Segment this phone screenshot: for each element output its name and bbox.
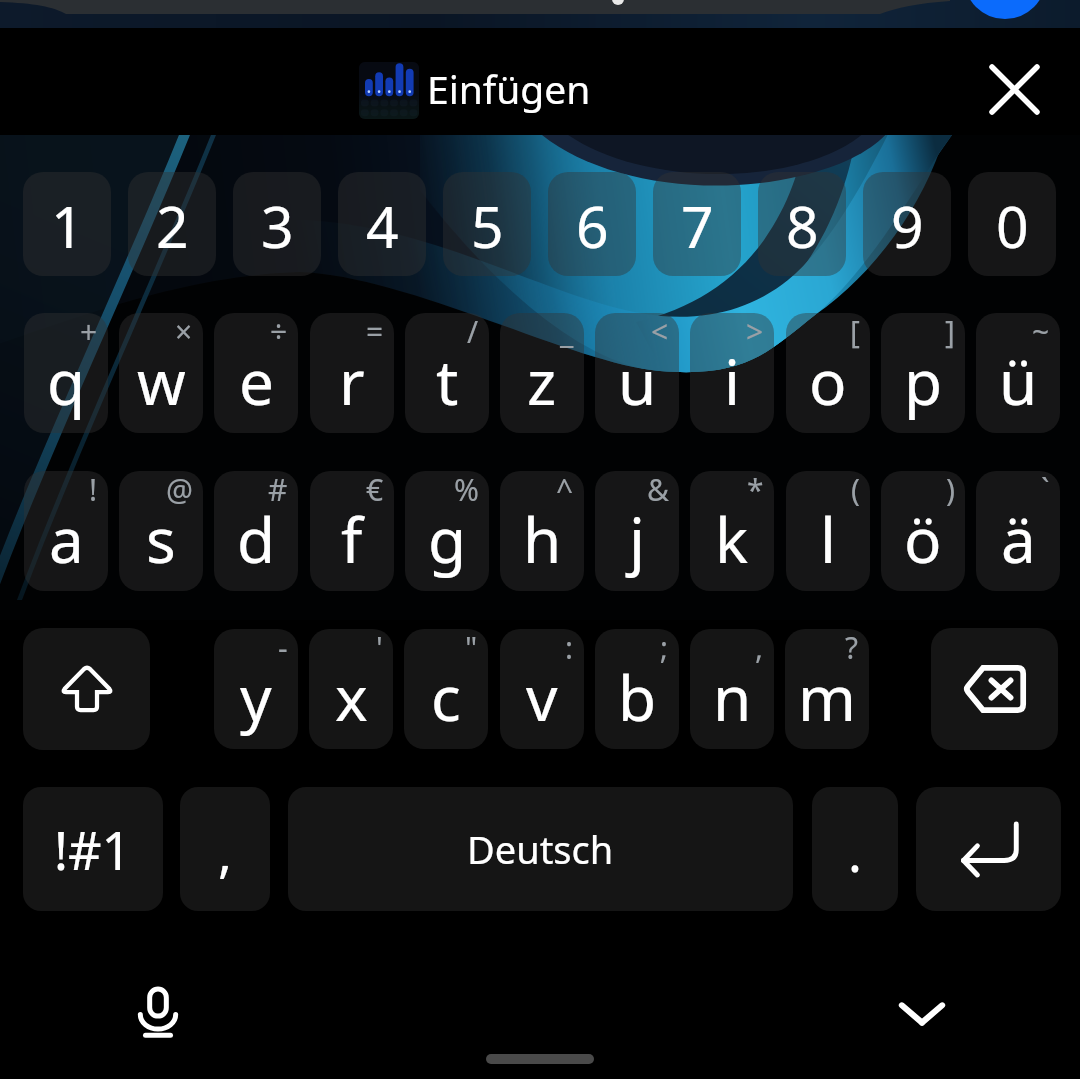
staticText: ` (1041, 471, 1050, 510)
staticText: u (618, 339, 657, 423)
button[interactable]: ÷ (214, 313, 298, 433)
staticText: 4 (366, 187, 399, 265)
button[interactable]: € (310, 471, 394, 591)
button[interactable]: Deutsch (288, 787, 793, 911)
staticText: 6 (576, 187, 609, 265)
staticText: g (428, 497, 467, 581)
staticText: - (278, 629, 288, 668)
staticText: 9 (891, 187, 924, 265)
button[interactable]: 9 (863, 172, 951, 276)
staticText: % (454, 471, 479, 510)
button[interactable]: 0 (968, 172, 1056, 276)
button[interactable]: * (690, 471, 774, 591)
button[interactable]: = (310, 313, 394, 433)
button[interactable]: ] (881, 313, 965, 433)
button[interactable]: Umschalten (23, 628, 150, 750)
button[interactable]: < (595, 313, 679, 433)
staticText: !#1 (54, 814, 132, 885)
button[interactable]: > (690, 313, 774, 433)
button[interactable]: . (812, 787, 898, 911)
button[interactable]: 3 (233, 172, 321, 276)
button[interactable]: Tastatur schließen (877, 968, 967, 1058)
staticText: m (798, 655, 856, 739)
staticText: " (465, 629, 478, 668)
button[interactable]: 2 (128, 172, 216, 276)
staticText: r (339, 339, 365, 423)
button[interactable]: 1 (23, 172, 111, 276)
button[interactable]: × (119, 313, 203, 433)
button[interactable]: 5 (443, 172, 531, 276)
staticText: x (335, 655, 368, 739)
staticText: e (239, 339, 274, 423)
staticText: , (755, 629, 764, 668)
staticText: k (715, 497, 749, 581)
staticText: 5 (471, 187, 504, 265)
button[interactable]: ; (595, 629, 679, 749)
button[interactable]: ? (785, 629, 869, 749)
button[interactable]: - (214, 629, 298, 749)
staticText: ? (845, 629, 859, 668)
button[interactable]: [ (786, 313, 870, 433)
button[interactable]: & (595, 471, 679, 591)
button[interactable]: % (405, 471, 489, 591)
button[interactable]: 8 (758, 172, 846, 276)
staticText: . (848, 816, 862, 887)
button[interactable]: 4 (338, 172, 426, 276)
button[interactable]: " (404, 629, 488, 749)
button[interactable]: 7 (653, 172, 741, 276)
button[interactable]: / (405, 313, 489, 433)
button[interactable]: ^ (500, 471, 584, 591)
button[interactable]: , (180, 787, 270, 911)
button[interactable]: Spracheingabe (113, 968, 203, 1058)
staticText: ) (946, 471, 955, 510)
staticText: 0 (996, 187, 1029, 265)
staticText: / (467, 313, 479, 352)
staticText: € (366, 471, 384, 510)
staticText: ] (945, 313, 955, 352)
staticText: : (565, 629, 574, 668)
staticText: _ (560, 313, 574, 352)
button[interactable]: Schließen (969, 44, 1059, 134)
button[interactable]: ' (309, 629, 393, 749)
button[interactable]: 6 (548, 172, 636, 276)
staticText: d (237, 497, 276, 581)
button[interactable]: ) (881, 471, 965, 591)
staticText: & (647, 471, 669, 510)
staticText: j (629, 497, 645, 581)
staticText: 2 (156, 187, 189, 265)
button[interactable]: , (690, 629, 774, 749)
staticText: q (47, 339, 86, 423)
staticText: s (146, 497, 176, 581)
staticText: n (713, 655, 752, 739)
button[interactable]: ( (786, 471, 870, 591)
button[interactable]: Löschen (931, 628, 1058, 750)
button[interactable]: !#1 (23, 787, 163, 911)
staticText: ~ (1032, 313, 1050, 352)
staticText: y (240, 655, 272, 739)
staticText: 7 (681, 187, 714, 265)
staticText: ' (376, 629, 383, 668)
staticText: v (526, 655, 558, 739)
button[interactable]: Eingabe (916, 787, 1061, 911)
button[interactable]: @ (119, 471, 203, 591)
button[interactable]: + (24, 313, 108, 433)
staticText: [ (850, 313, 860, 352)
staticText: > (746, 313, 764, 352)
staticText: # (268, 471, 288, 510)
staticText: Einfügen (427, 62, 591, 115)
staticText: ä (1001, 497, 1036, 581)
staticText: Deutsch (467, 823, 614, 875)
staticText: < (651, 313, 669, 352)
staticText: c (431, 655, 461, 739)
staticText: i (724, 339, 740, 423)
button[interactable]: ! (24, 471, 108, 591)
button[interactable]: ` (976, 471, 1060, 591)
staticText: ; (660, 629, 669, 668)
button[interactable]: ~ (976, 313, 1060, 433)
button[interactable]: # (214, 471, 298, 591)
staticText: h (523, 497, 562, 581)
staticText: * (747, 471, 764, 510)
staticText: o (809, 339, 847, 423)
button[interactable]: : (500, 629, 584, 749)
button[interactable]: _ (500, 313, 584, 433)
